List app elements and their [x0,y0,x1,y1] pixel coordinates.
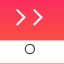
button[interactable]: Continue [16,9,43,26]
button[interactable]: Record [24,43,36,55]
